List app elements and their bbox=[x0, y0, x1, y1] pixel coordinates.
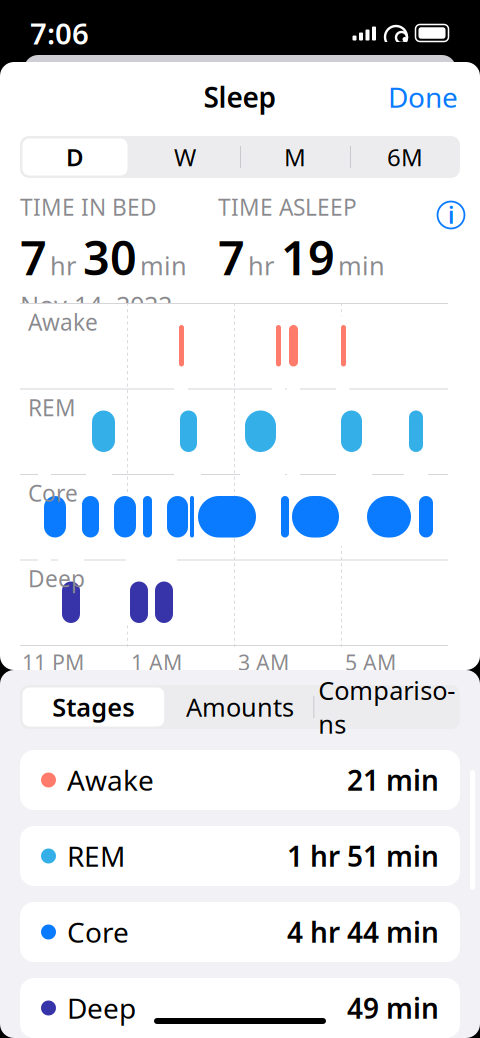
staticText: TIME IN BED bbox=[20, 192, 157, 222]
button[interactable]: W bbox=[130, 136, 240, 178]
staticText: TIME ASLEEP bbox=[218, 192, 357, 222]
staticText: Stages bbox=[52, 690, 134, 724]
button[interactable]: 6M bbox=[350, 136, 460, 178]
staticText: i bbox=[448, 200, 454, 230]
staticText: min bbox=[140, 248, 187, 282]
button[interactable]: Stages bbox=[20, 685, 167, 729]
staticText: Awake bbox=[67, 761, 154, 799]
button[interactable]: REM bbox=[20, 826, 460, 886]
staticText: 1 AM bbox=[131, 648, 182, 676]
staticText: M bbox=[284, 141, 306, 173]
staticText: hr bbox=[248, 248, 274, 282]
staticText: 11 PM bbox=[22, 648, 84, 676]
button[interactable]: Amounts bbox=[167, 685, 313, 729]
staticText: 4 hr 44 min bbox=[287, 913, 439, 951]
button[interactable]: M bbox=[240, 136, 350, 178]
staticText: Deep bbox=[67, 989, 136, 1027]
staticText: REM bbox=[67, 837, 125, 875]
staticText: 49 min bbox=[347, 989, 439, 1027]
button[interactable]: Comparisons bbox=[313, 685, 460, 729]
button[interactable]: Deep bbox=[20, 978, 460, 1038]
staticText: Awake bbox=[28, 307, 98, 337]
button[interactable]: D bbox=[20, 136, 130, 178]
staticText: 19 bbox=[281, 226, 335, 288]
staticText: 21 min bbox=[347, 761, 439, 799]
staticText: Core bbox=[28, 478, 78, 508]
button[interactable]: Done bbox=[366, 75, 480, 119]
staticText: 7:06 bbox=[30, 13, 89, 52]
staticText: W bbox=[174, 141, 196, 173]
button[interactable]: About sleep stages bbox=[428, 192, 474, 238]
staticText: Amounts bbox=[186, 690, 294, 724]
staticText: Comparisons bbox=[318, 673, 455, 741]
staticText: 3 AM bbox=[238, 648, 289, 676]
button[interactable]: Awake bbox=[20, 750, 460, 810]
staticText: REM bbox=[28, 392, 76, 423]
staticText: Core bbox=[67, 913, 129, 951]
staticText: Nov 14, 2022 bbox=[20, 288, 172, 322]
staticText: D bbox=[66, 141, 84, 173]
staticText: 7 bbox=[20, 226, 47, 288]
staticText: Done bbox=[388, 78, 458, 116]
staticText: 7 bbox=[218, 226, 245, 288]
staticText: min bbox=[338, 248, 385, 282]
staticText: hr bbox=[50, 248, 76, 282]
staticText: Sleep bbox=[203, 78, 276, 116]
staticText: Deep bbox=[28, 563, 85, 594]
button[interactable]: Core bbox=[20, 902, 460, 962]
staticText: 30 bbox=[83, 226, 137, 288]
staticText: 6M bbox=[387, 141, 423, 173]
staticText: 1 hr 51 min bbox=[287, 837, 439, 875]
staticText: 5 AM bbox=[345, 648, 396, 676]
